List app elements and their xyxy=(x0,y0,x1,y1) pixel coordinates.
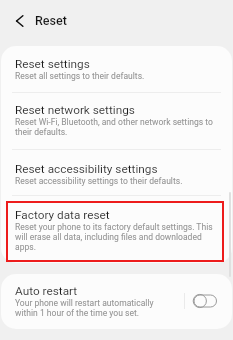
button[interactable]: Factory data reset xyxy=(1,196,232,263)
staticText: Reset network settings xyxy=(15,103,135,117)
button[interactable]: Back xyxy=(11,13,27,29)
staticText: Reset xyxy=(35,13,67,28)
button[interactable]: Reset settings xyxy=(1,46,232,93)
staticText: Reset settings xyxy=(15,57,90,71)
staticText: Your phone will restart automatically wi… xyxy=(15,298,167,318)
button[interactable]: Reset network settings xyxy=(1,93,232,150)
button[interactable]: Reset accessibility settings xyxy=(1,150,232,196)
button[interactable]: Auto restart xyxy=(1,274,232,329)
staticText: Factory data reset xyxy=(15,208,110,222)
staticText: Reset accessibility settings to their de… xyxy=(15,176,220,186)
staticText: Reset all settings to their defaults. xyxy=(15,71,220,81)
staticText: Reset your phone to its factory default … xyxy=(15,222,220,252)
button[interactable]: Auto restart toggle xyxy=(192,294,218,309)
staticText: Reset Wi-Fi, Bluetooth, and other networ… xyxy=(15,117,220,137)
staticText: Reset accessibility settings xyxy=(15,162,158,176)
staticText: Auto restart xyxy=(15,284,78,298)
